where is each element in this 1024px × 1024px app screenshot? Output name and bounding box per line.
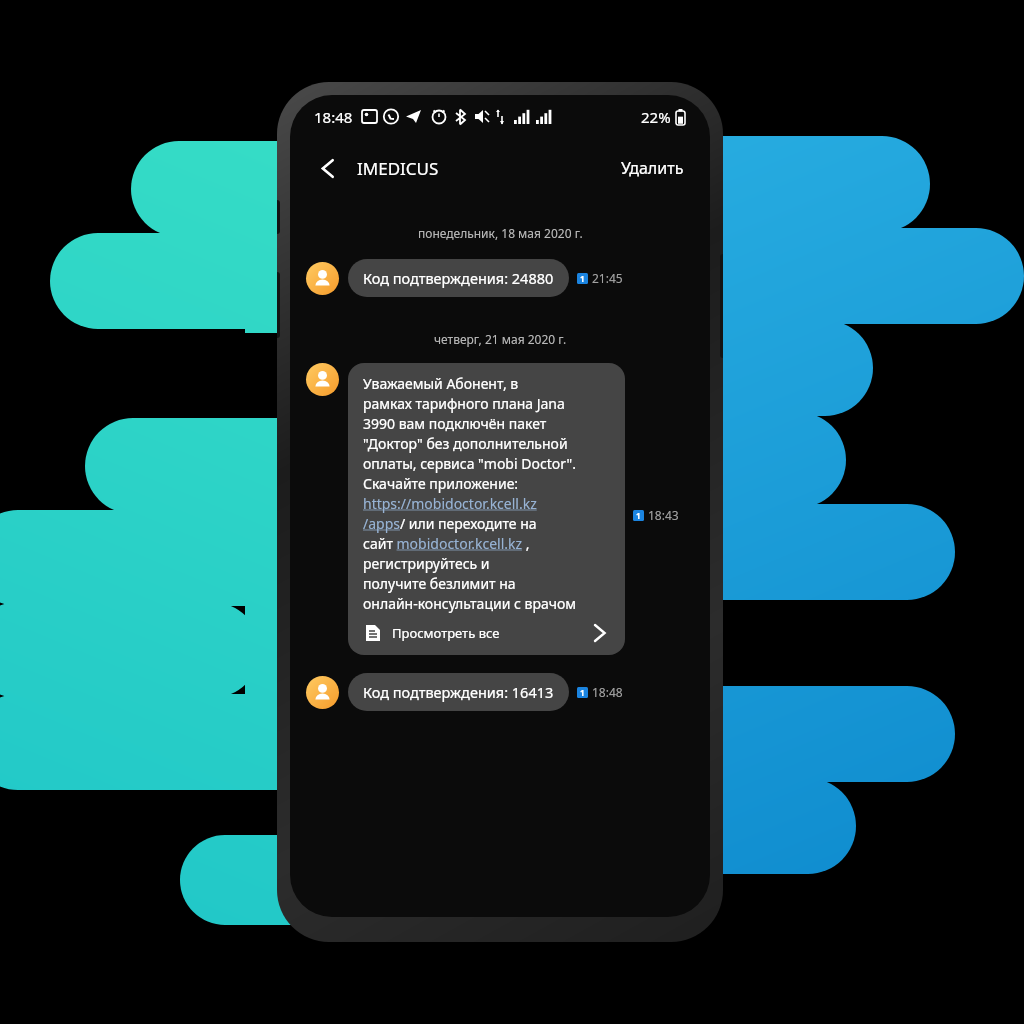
button[interactable]: Back: [308, 148, 348, 188]
staticText: 1: [580, 687, 585, 698]
staticText: 18:43: [648, 507, 679, 523]
staticText: 22%: [641, 107, 671, 127]
button[interactable]: Код подтверждения: 16413: [306, 673, 710, 711]
staticText: Код подтверждения: 16413: [363, 682, 554, 702]
staticText: 18:48: [592, 684, 623, 700]
staticText: Просмотреть все: [392, 624, 500, 642]
button[interactable]: Удалить: [617, 151, 688, 185]
staticText: IMEDICUS: [357, 157, 439, 180]
staticText: Код подтверждения: 24880: [363, 268, 554, 288]
button[interactable]: Просмотреть все: [364, 623, 609, 643]
staticText: 1: [636, 510, 641, 521]
staticText: 1: [580, 273, 585, 284]
staticText: Удалить: [621, 157, 684, 179]
button[interactable]: Код подтверждения: 24880: [306, 259, 710, 297]
staticText: 21:45: [592, 270, 623, 286]
staticText: понедельник, 18 мая 2020 г.: [418, 225, 583, 241]
staticText: Уважаемый Абонент, в рамках тарифного пл…: [363, 374, 577, 613]
button[interactable]: Уважаемый Абонент, в рамках тарифного пл…: [348, 363, 625, 655]
staticText: четверг, 21 мая 2020 г.: [434, 331, 567, 347]
staticText: 18:48: [314, 107, 353, 127]
